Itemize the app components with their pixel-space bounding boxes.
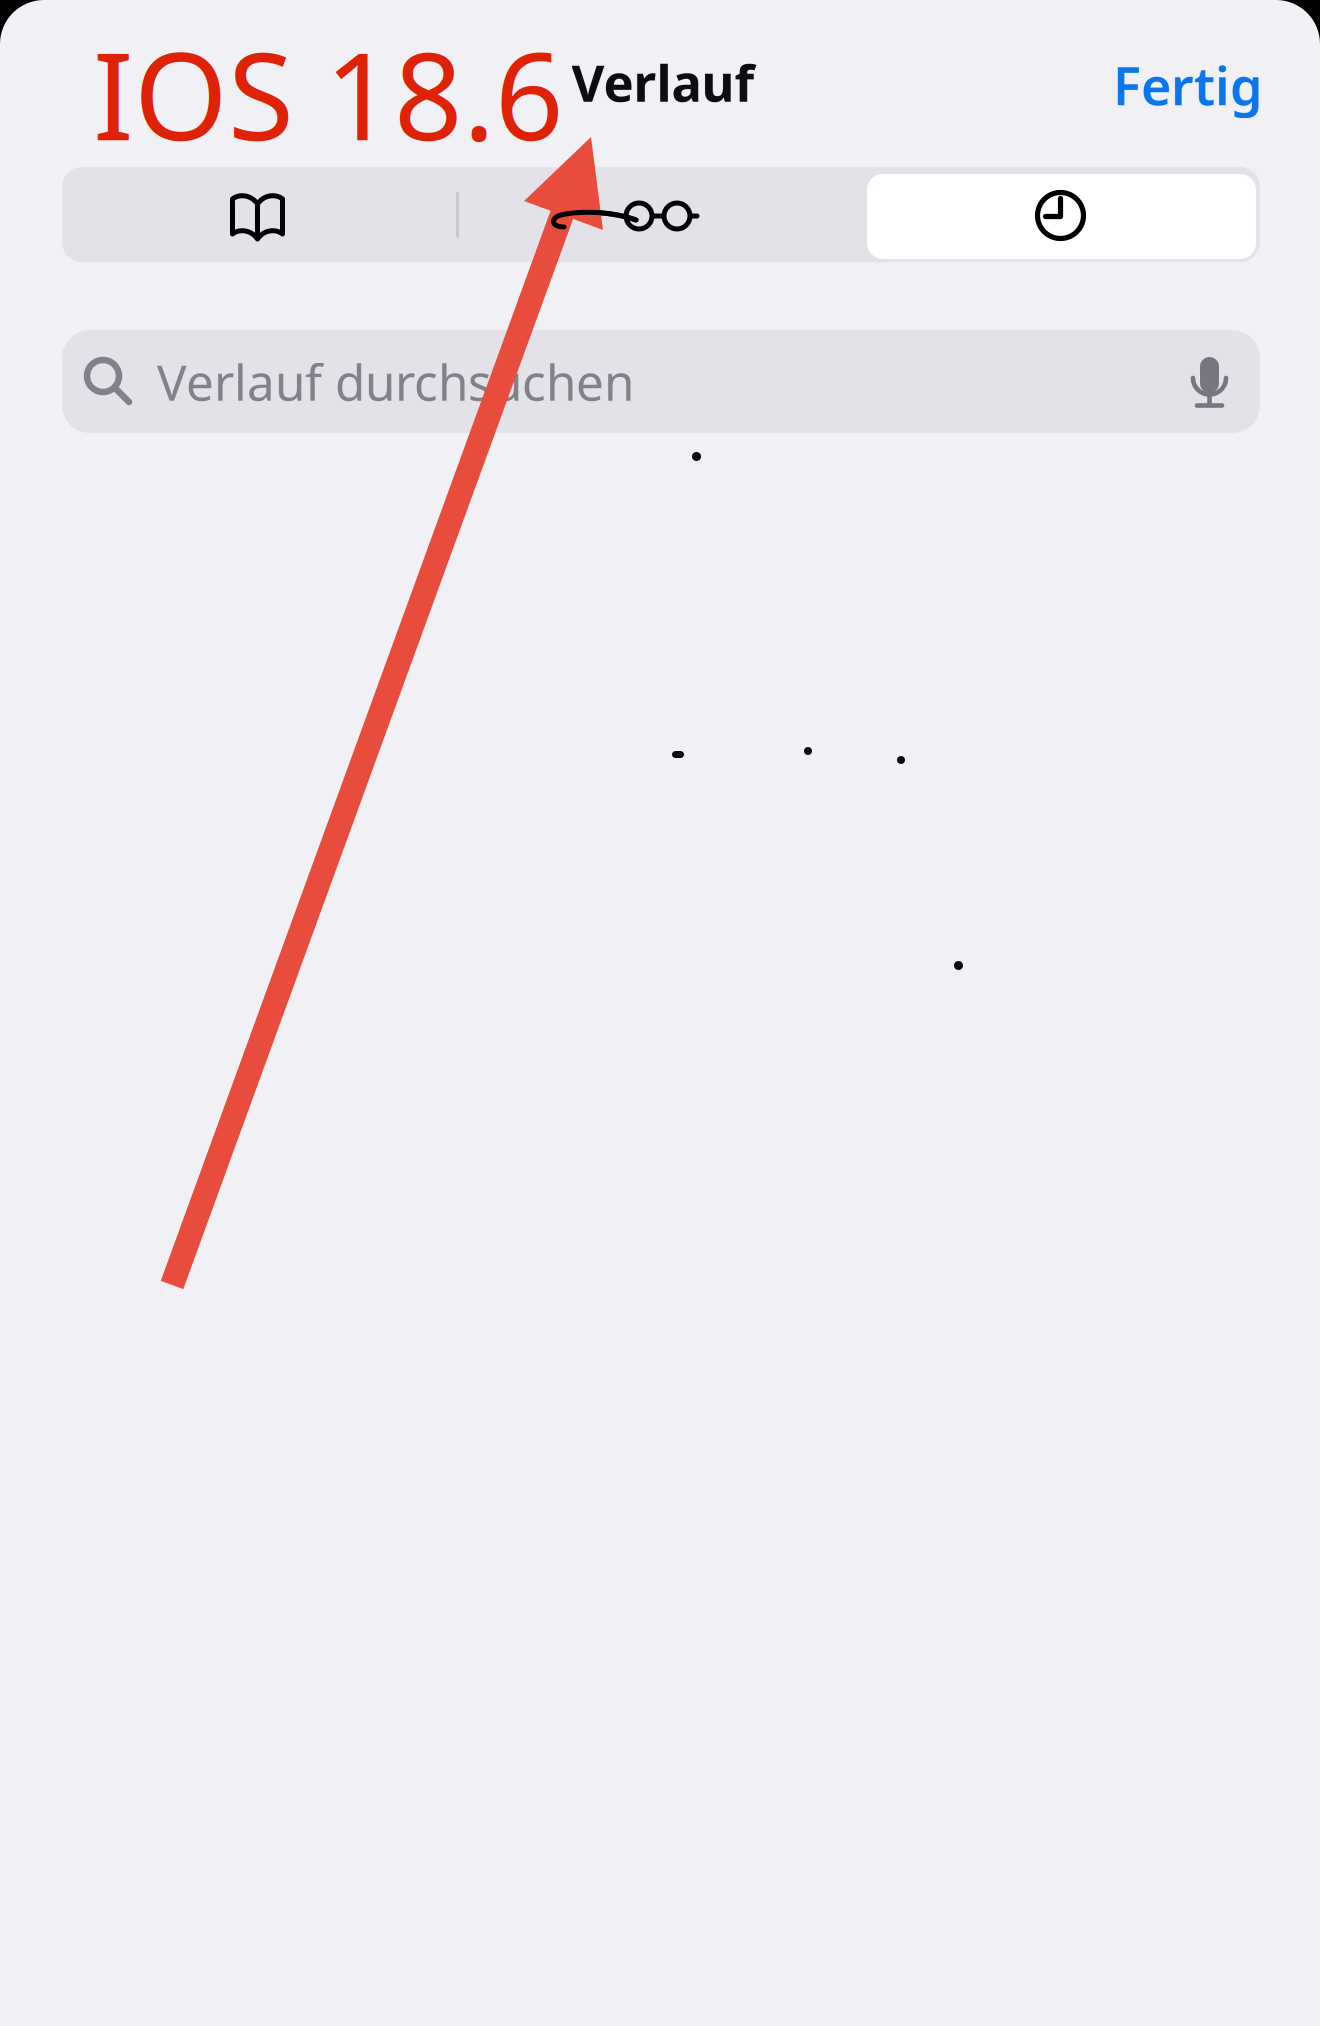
- staticText: Verlauf durchsuchen: [157, 349, 634, 414]
- button[interactable]: Lesezeichen: [58, 169, 457, 264]
- button[interactable]: Verlauf durchsuchen: [62, 330, 1260, 433]
- staticText: Fertig: [1113, 50, 1263, 120]
- button[interactable]: Leseliste: [420, 167, 819, 262]
- staticText: IOS 18.6: [93, 14, 564, 173]
- button[interactable]: Verlauf: [861, 168, 1260, 263]
- button[interactable]: Fertig: [1043, 47, 1263, 123]
- staticText: Verlauf: [571, 48, 754, 116]
